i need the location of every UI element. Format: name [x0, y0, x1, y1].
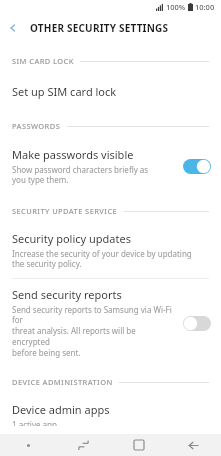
staticText: Increase the security of your device by …	[12, 248, 192, 270]
staticText: SECURITY UPDATE SERVICE	[12, 206, 118, 216]
button[interactable]: Device admin apps	[0, 397, 221, 434]
button[interactable]: Back	[166, 434, 221, 456]
button[interactable]: Send security reports	[0, 279, 221, 367]
staticText: Make passwords visible	[12, 147, 134, 162]
staticText: PASSWORDS	[12, 121, 61, 131]
button[interactable]: Keyboard toggle	[0, 434, 56, 456]
button[interactable]: Home	[111, 434, 166, 456]
staticText: Security policy updates	[12, 231, 131, 246]
staticText: Send security reports to Samsung via Wi-…	[12, 304, 175, 359]
staticText: Send security reports	[12, 287, 122, 302]
staticText: OTHER SECURITY SETTINGS	[30, 21, 169, 35]
staticText: 10:00	[195, 2, 215, 12]
button[interactable]: Toggle on	[183, 159, 211, 174]
staticText: 100%	[166, 2, 186, 12]
button[interactable]: Set up SIM card lock	[0, 78, 221, 109]
staticText: 1 active app	[12, 419, 57, 426]
staticText: Show password characters briefly as you …	[12, 164, 149, 186]
button[interactable]: Make passwords visible	[0, 141, 221, 194]
button[interactable]: Security policy updates	[0, 226, 221, 278]
button[interactable]: Back	[0, 15, 26, 41]
button[interactable]: Toggle off	[183, 316, 211, 331]
button[interactable]: Recent apps	[56, 434, 111, 456]
staticText: Set up SIM card lock	[12, 84, 117, 99]
staticText: SIM CARD LOCK	[12, 56, 74, 66]
staticText: DEVICE ADMINISTRATION	[12, 377, 113, 387]
staticText: Device admin apps	[12, 402, 110, 417]
